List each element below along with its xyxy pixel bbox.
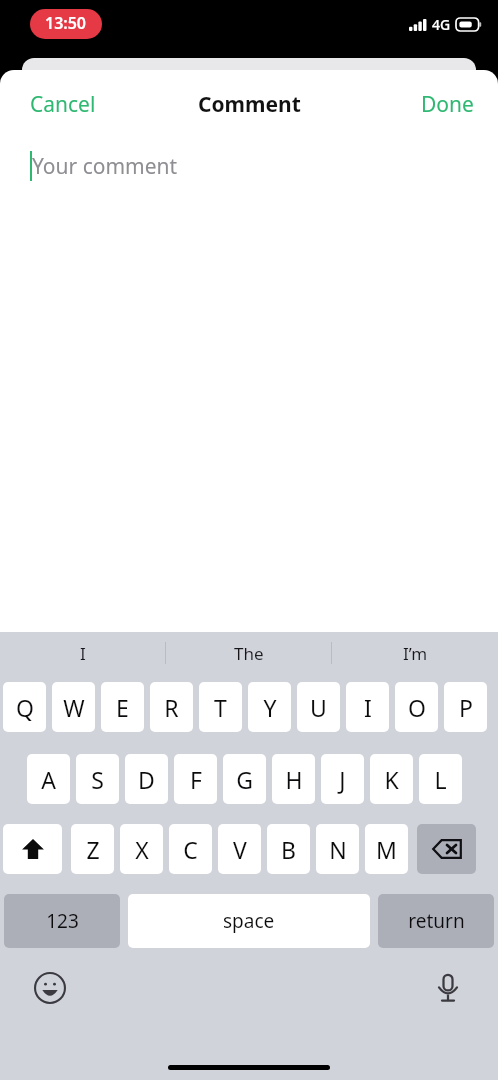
button[interactable]: R [150, 682, 193, 732]
staticText: Z [86, 834, 100, 865]
button[interactable]: N [316, 824, 359, 874]
staticText: Comment [198, 90, 301, 119]
staticText: K [384, 764, 399, 795]
staticText: T [214, 692, 227, 723]
staticText: L [434, 764, 447, 795]
staticText: V [233, 834, 247, 865]
staticText: N [329, 834, 347, 865]
button[interactable]: D [125, 754, 168, 804]
button[interactable]: Backspace [417, 824, 476, 874]
button[interactable]: B [267, 824, 310, 874]
button[interactable]: A [27, 754, 70, 804]
button[interactable]: H [272, 754, 315, 804]
button[interactable]: J [321, 754, 364, 804]
staticText: B [281, 834, 296, 865]
staticText: M [376, 834, 397, 865]
staticText: Q [16, 692, 34, 723]
staticText: Done [421, 90, 474, 119]
button[interactable]: Done [397, 80, 498, 129]
button[interactable]: G [223, 754, 266, 804]
button[interactable]: K [370, 754, 413, 804]
staticText: H [285, 764, 303, 795]
staticText: The [234, 642, 264, 665]
button[interactable]: U [297, 682, 340, 732]
button[interactable]: I [346, 682, 389, 732]
staticText: S [91, 764, 104, 795]
staticText: D [138, 764, 155, 795]
button[interactable]: Dictation [428, 968, 468, 1008]
staticText: Cancel [30, 90, 96, 119]
staticText: I’m [403, 642, 428, 665]
button[interactable]: Cancel [0, 80, 126, 129]
button[interactable]: V [218, 824, 261, 874]
button[interactable]: X [120, 824, 163, 874]
button[interactable]: The [166, 632, 332, 674]
staticText: I [364, 692, 372, 723]
button[interactable]: 123 [4, 894, 120, 948]
button[interactable]: E [101, 682, 144, 732]
button[interactable]: M [365, 824, 408, 874]
staticText: E [116, 692, 129, 723]
button[interactable]: I [0, 632, 166, 674]
staticText: 123 [46, 908, 79, 934]
staticText: Your comment [32, 152, 178, 181]
staticText: I [80, 642, 86, 665]
staticText: Y [263, 692, 277, 723]
button[interactable]: O [395, 682, 438, 732]
button[interactable]: S [76, 754, 119, 804]
staticText: F [190, 764, 202, 795]
button[interactable]: I’m [332, 632, 498, 674]
button[interactable]: Shift [3, 824, 62, 874]
button[interactable]: return [378, 894, 494, 948]
staticText: P [459, 692, 473, 723]
staticText: R [164, 692, 179, 723]
button[interactable]: Your comment [0, 138, 498, 194]
button[interactable]: P [444, 682, 487, 732]
staticText: space [223, 908, 275, 934]
staticText: O [408, 692, 426, 723]
staticText: return [408, 908, 465, 934]
staticText: A [41, 764, 56, 795]
staticText: X [135, 834, 149, 865]
button[interactable]: space [128, 894, 370, 948]
button[interactable]: Q [3, 682, 46, 732]
button[interactable]: Z [71, 824, 114, 874]
button[interactable]: Emoji [30, 968, 70, 1008]
staticText: U [310, 692, 327, 723]
button[interactable]: F [174, 754, 217, 804]
staticText: 13:50 [45, 12, 87, 34]
button[interactable]: W [52, 682, 95, 732]
button[interactable]: Y [248, 682, 291, 732]
staticText: 4G [432, 15, 451, 34]
button[interactable]: C [169, 824, 212, 874]
button[interactable]: T [199, 682, 242, 732]
button[interactable]: L [419, 754, 462, 804]
staticText: W [63, 692, 85, 723]
staticText: J [339, 764, 346, 795]
staticText: G [236, 764, 253, 795]
staticText: C [183, 834, 198, 865]
